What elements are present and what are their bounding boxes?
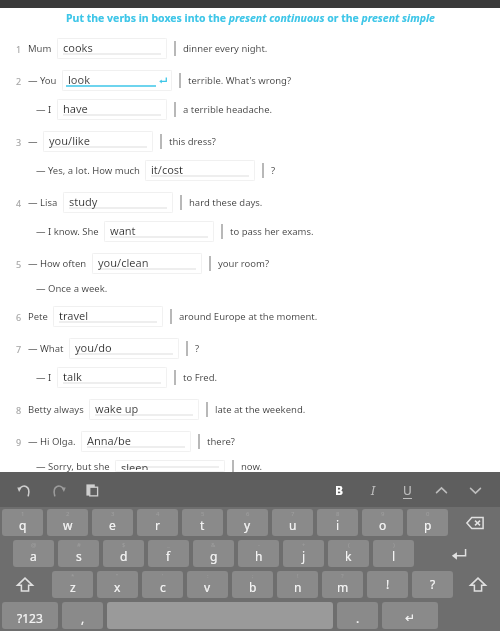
- button[interactable]: 4: [137, 509, 178, 536]
- staticText: s: [76, 548, 82, 564]
- button[interactable]: ): [373, 540, 414, 567]
- button[interactable]: want: [104, 221, 214, 242]
- button[interactable]: .: [337, 602, 378, 629]
- button[interactable]: *: [52, 571, 93, 598]
- button[interactable]: 1: [2, 509, 43, 536]
- button[interactable]: 2: [47, 509, 88, 536]
- button[interactable]: 6: [227, 509, 268, 536]
- button[interactable]: #: [58, 540, 99, 567]
- staticText: k: [345, 548, 352, 564]
- button[interactable]: Previous field: [428, 477, 454, 503]
- button[interactable]: 3: [92, 509, 133, 536]
- button[interactable]: talk: [57, 367, 167, 388]
- button[interactable]: _: [148, 540, 189, 567]
- staticText: 7: [16, 343, 22, 355]
- button[interactable]: Backspace: [452, 509, 498, 536]
- button[interactable]: (: [328, 540, 369, 567]
- staticText: — Once a week.: [36, 282, 108, 295]
- button[interactable]: travel: [53, 306, 163, 327]
- staticText: your room?: [218, 257, 270, 270]
- button[interactable]: look: [62, 70, 172, 91]
- button[interactable]: 8: [317, 509, 358, 536]
- staticText: 9: [16, 436, 22, 448]
- button[interactable]: 9: [362, 509, 403, 536]
- button[interactable]: -: [238, 540, 279, 567]
- button[interactable]: Anna/be: [81, 431, 191, 452]
- staticText: 5: [201, 510, 205, 518]
- staticText: Anna/be: [87, 433, 131, 448]
- button[interactable]: Shift: [2, 571, 48, 598]
- staticText: f: [166, 548, 171, 564]
- button[interactable]: ? .: [412, 571, 453, 598]
- staticText: — Hi Olga.: [28, 435, 76, 448]
- button[interactable]: Next field: [462, 477, 488, 503]
- button[interactable]: ,: [62, 602, 103, 629]
- button[interactable]: you/clean: [92, 253, 202, 274]
- staticText: *: [71, 572, 75, 580]
- staticText: you/do: [75, 340, 112, 355]
- button[interactable]: ;: [232, 571, 273, 598]
- staticText: @: [31, 541, 37, 549]
- button[interactable]: study: [63, 192, 173, 213]
- button[interactable]: cooks: [57, 38, 167, 59]
- button[interactable]: have: [57, 99, 167, 120]
- button[interactable]: Paste: [80, 478, 104, 502]
- staticText: 6: [16, 311, 22, 323]
- staticText: #: [77, 541, 81, 549]
- button[interactable]: I: [360, 477, 386, 503]
- button[interactable]: Redo: [46, 478, 70, 502]
- button[interactable]: U: [394, 477, 420, 503]
- staticText: b: [249, 579, 257, 595]
- button[interactable]: sleep: [115, 460, 225, 472]
- staticText: 6: [246, 510, 250, 518]
- button[interactable]: Undo: [12, 478, 36, 502]
- button[interactable]: :: [187, 571, 228, 598]
- staticText: ,: [81, 610, 85, 626]
- staticText: i: [336, 517, 340, 533]
- button[interactable]: 0: [407, 509, 448, 536]
- button[interactable]: &: [193, 540, 234, 567]
- staticText: Betty always: [28, 403, 84, 416]
- staticText: you/clean: [98, 255, 149, 270]
- button[interactable]: $: [103, 540, 144, 567]
- button[interactable]: ?: [322, 571, 363, 598]
- staticText: study: [69, 194, 98, 209]
- button[interactable]: ↵: [382, 602, 438, 629]
- staticText: t: [200, 517, 205, 533]
- staticText: w: [63, 517, 73, 533]
- button[interactable]: !: [277, 571, 318, 598]
- staticText: j: [302, 548, 306, 564]
- button[interactable]: Enter: [418, 540, 498, 567]
- button[interactable]: +: [283, 540, 324, 567]
- staticText: 1: [16, 43, 22, 55]
- button[interactable]: @: [13, 540, 54, 567]
- staticText: cooks: [63, 40, 93, 55]
- staticText: $: [122, 541, 126, 549]
- staticText: 3: [16, 136, 22, 148]
- button[interactable]: ! ,: [367, 571, 408, 598]
- staticText: ! ,: [386, 576, 390, 598]
- staticText: 1: [21, 510, 25, 518]
- staticText: h: [255, 548, 263, 564]
- staticText: o: [379, 517, 387, 533]
- staticText: !: [297, 572, 299, 580]
- button[interactable]: you/like: [43, 131, 153, 152]
- button[interactable]: ?123: [2, 602, 58, 629]
- button[interactable]: it/cost: [145, 160, 255, 181]
- button[interactable]: ': [142, 571, 183, 598]
- button[interactable]: wake up: [89, 399, 199, 420]
- button[interactable]: 7: [272, 509, 313, 536]
- button[interactable]: ": [97, 571, 138, 598]
- button[interactable]: you/do: [69, 338, 179, 359]
- staticText: this dress?: [169, 135, 216, 148]
- staticText: to Fred.: [183, 371, 218, 384]
- button[interactable]: 5: [182, 509, 223, 536]
- button[interactable]: B: [326, 477, 352, 503]
- staticText: ↵: [405, 611, 416, 625]
- staticText: z: [70, 579, 76, 595]
- button[interactable]: Shift right: [457, 571, 498, 598]
